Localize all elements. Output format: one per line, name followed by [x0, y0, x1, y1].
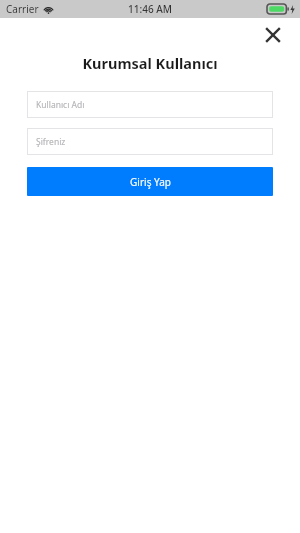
button[interactable]: Şifreniz [27, 128, 273, 155]
staticText: Kurumsal Kullanıcı [82, 53, 218, 73]
button[interactable]: Giriş Yap [27, 167, 273, 196]
staticText: Giriş Yap [130, 175, 171, 189]
button[interactable]: Kullanıcı Adı [27, 91, 273, 118]
staticText: 11:46 AM [128, 2, 172, 16]
button[interactable]: Kapat [258, 20, 288, 50]
staticText: Kullanıcı Adı [36, 99, 85, 111]
staticText: Carrier [6, 2, 39, 16]
staticText: Şifreniz [36, 136, 66, 148]
